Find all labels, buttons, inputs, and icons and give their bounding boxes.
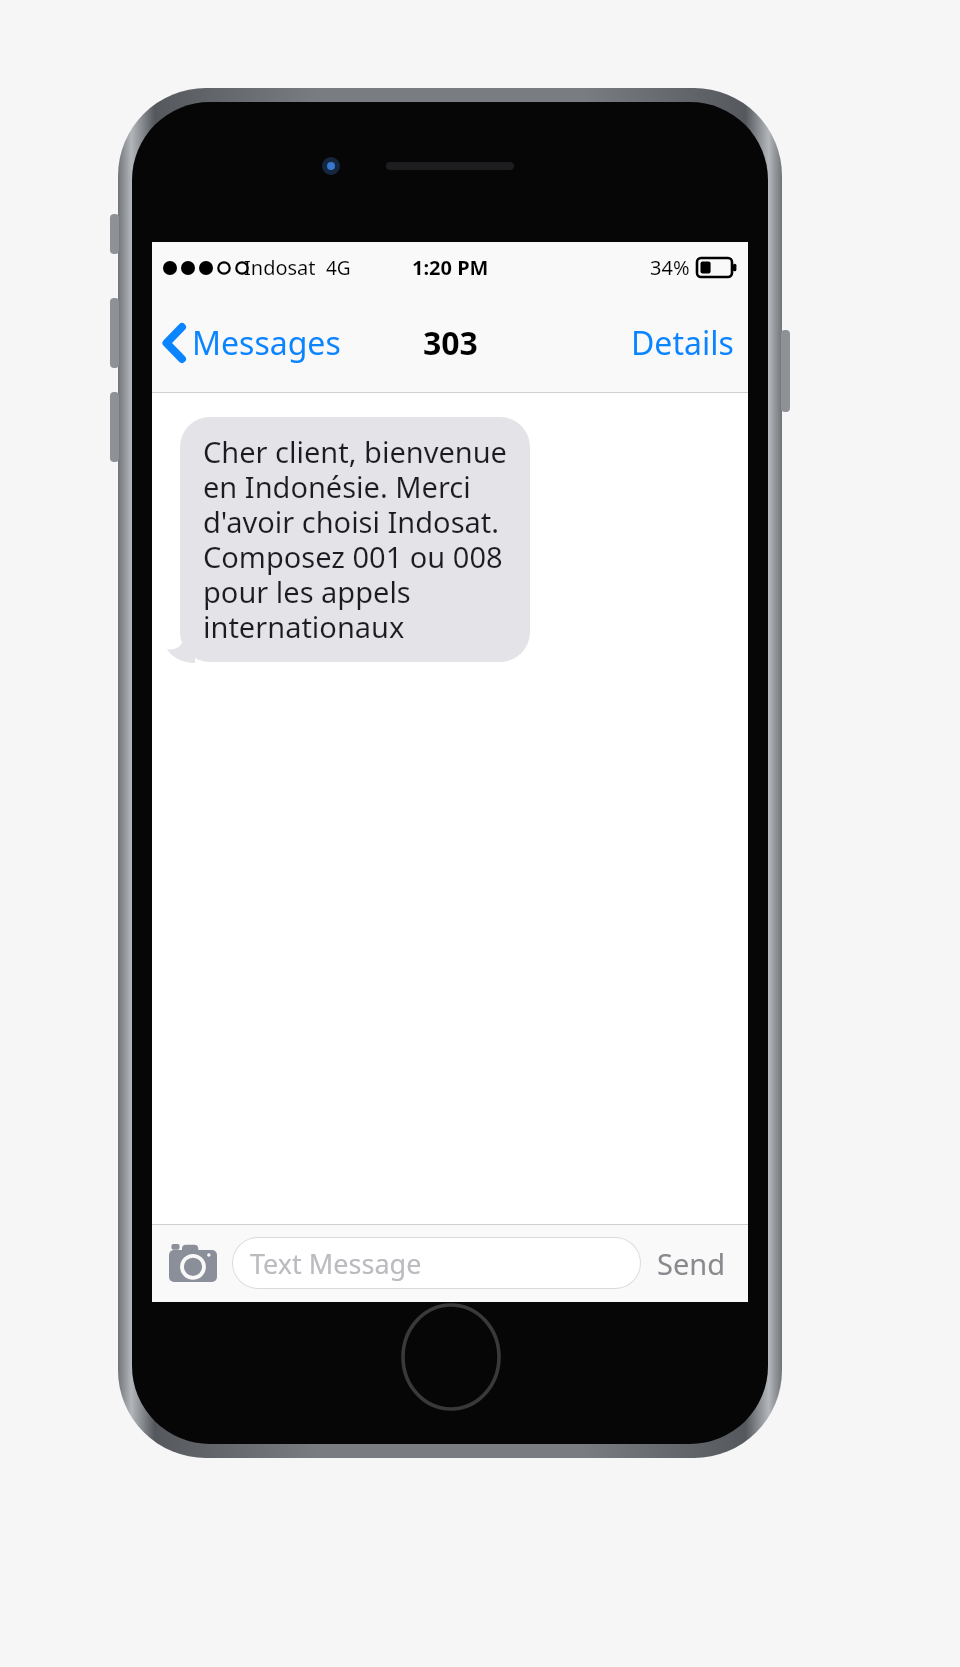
staticText: 4G	[326, 255, 351, 281]
staticText: Send	[657, 1244, 726, 1283]
button[interactable]: Text Message	[232, 1237, 641, 1289]
staticText: 34%	[650, 254, 690, 281]
button[interactable]: Details	[617, 313, 748, 373]
button[interactable]: Send	[647, 1236, 736, 1291]
staticText: Indosat	[244, 254, 316, 281]
staticText: Cher client, bienvenue en Indonésie. Mer…	[203, 432, 507, 647]
button[interactable]: Messages	[152, 313, 351, 373]
staticText: Messages	[192, 321, 341, 365]
staticText: Details	[631, 321, 734, 365]
staticText: Text Message	[250, 1245, 422, 1282]
staticText: 1:20 PM	[412, 254, 489, 281]
staticText: 303	[423, 321, 478, 365]
button[interactable]: Take photo or video	[164, 1239, 222, 1287]
button[interactable]: Cher client, bienvenue en Indonésie. Mer…	[180, 417, 530, 662]
